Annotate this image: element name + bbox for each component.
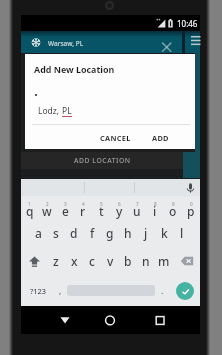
button[interactable]: 4 [74, 196, 92, 219]
staticText: 7 [136, 201, 139, 207]
button[interactable]: ADD [144, 131, 176, 144]
staticText: 4 [82, 201, 85, 207]
staticText: Warsaw, PL [48, 39, 84, 48]
button[interactable]: Home [102, 312, 118, 328]
staticText: 0 [190, 201, 193, 207]
staticText: z [53, 253, 59, 269]
button[interactable]: CANCEL [94, 131, 136, 144]
button[interactable]: j [137, 219, 155, 247]
button[interactable]: Menu [185, 31, 200, 53]
staticText: y [116, 203, 123, 219]
button[interactable]: l [173, 219, 191, 247]
button[interactable]: n [137, 247, 155, 275]
button[interactable]: Back [57, 312, 73, 328]
staticText: x [71, 253, 78, 269]
button[interactable]: . [155, 275, 169, 306]
staticText: m [158, 253, 170, 269]
staticText: c [89, 253, 95, 269]
staticText: CANCEL [100, 133, 131, 143]
button[interactable]: b [119, 247, 137, 275]
button[interactable]: 6 [110, 196, 128, 219]
staticText: 8 [154, 201, 157, 207]
staticText: o [169, 203, 177, 219]
button[interactable]: g [101, 219, 119, 247]
button[interactable]: 0 [182, 196, 200, 219]
button[interactable]: 3 [56, 196, 74, 219]
staticText: w [42, 203, 52, 219]
staticText: ADD LOCATION [74, 156, 131, 165]
staticText: g [106, 225, 114, 241]
staticText: Add New Location [34, 63, 115, 75]
button[interactable]: k [155, 219, 173, 247]
button[interactable]: 9 [164, 196, 182, 219]
staticText: ?123 [30, 286, 46, 296]
staticText: 3 [64, 201, 67, 207]
button[interactable]: 2 [38, 196, 56, 219]
button[interactable]: d [65, 219, 83, 247]
staticText: t [99, 203, 104, 219]
button[interactable]: z [47, 247, 65, 275]
staticText: 2 [46, 201, 49, 207]
button[interactable]: , [54, 275, 67, 306]
staticText: i [153, 203, 157, 219]
button[interactable]: Backspace [173, 247, 200, 275]
staticText: r [80, 203, 86, 219]
staticText: a [35, 225, 42, 241]
staticText: h [124, 225, 132, 241]
button[interactable]: ?123 [21, 275, 54, 306]
button[interactable]: 7 [128, 196, 146, 219]
staticText: n [142, 253, 150, 269]
staticText: u [133, 203, 141, 219]
staticText: v [107, 253, 114, 269]
staticText: 6 [118, 201, 121, 207]
staticText: k [161, 225, 168, 241]
staticText: 10:46 [177, 18, 198, 29]
staticText: p [187, 203, 195, 219]
button[interactable]: Recent apps [152, 312, 168, 328]
button[interactable]: Done [176, 282, 194, 300]
staticText: f [90, 225, 95, 241]
staticText: b [124, 253, 132, 269]
button[interactable]: Voice input [183, 180, 198, 195]
button[interactable]: c [83, 247, 101, 275]
button[interactable]: 1 [21, 196, 38, 219]
button[interactable]: h [119, 219, 137, 247]
button[interactable]: f [83, 219, 101, 247]
button[interactable]: v [101, 247, 119, 275]
staticText: , [59, 285, 62, 297]
staticText: q [26, 203, 34, 219]
button[interactable]: x [65, 247, 83, 275]
staticText: l [180, 225, 184, 241]
staticText: ADD [152, 133, 169, 143]
button[interactable]: a [29, 219, 47, 247]
staticText: Lodz, [38, 105, 62, 117]
staticText: 5 [100, 201, 103, 207]
button[interactable]: 5 [92, 196, 110, 219]
button[interactable]: 8 [146, 196, 164, 219]
staticText: PL [62, 105, 72, 117]
button[interactable]: Weather condition [27, 34, 45, 51]
staticText: 1 [28, 201, 31, 207]
staticText: 9 [172, 201, 175, 207]
staticText: s [53, 225, 59, 241]
button[interactable]: s [47, 219, 65, 247]
button[interactable]: m [155, 247, 173, 275]
button[interactable]: Close [155, 34, 178, 56]
button[interactable]: ADD LOCATION [21, 152, 183, 169]
staticText: j [144, 225, 148, 241]
button[interactable]: Shift [21, 247, 47, 275]
staticText: . [161, 285, 164, 297]
staticText: e [62, 203, 69, 219]
staticText: d [70, 225, 78, 241]
